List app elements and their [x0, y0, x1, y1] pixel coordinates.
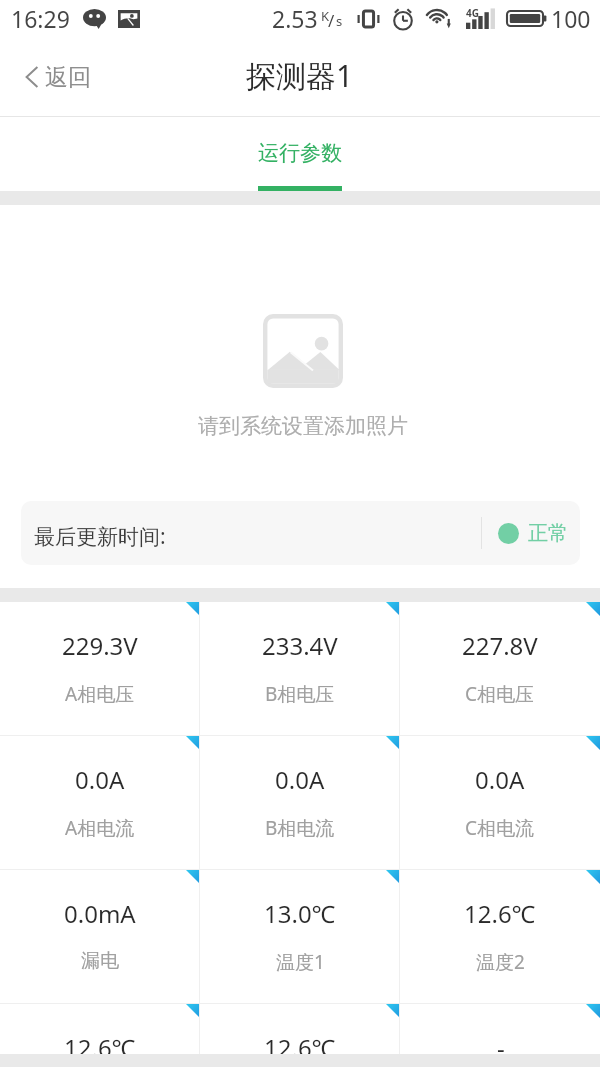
staticText: 227.8V: [462, 629, 538, 662]
button[interactable]: -: [400, 1004, 600, 1067]
staticText: 2.53: [272, 3, 318, 34]
button[interactable]: 运行参数: [200, 117, 400, 191]
button[interactable]: 0.0mA: [0, 870, 200, 1003]
staticText: 温度2: [476, 949, 525, 975]
staticText: 探测器1: [246, 55, 354, 96]
button[interactable]: 229.3V: [0, 602, 200, 735]
staticText: B相电压: [265, 681, 335, 707]
button[interactable]: 0.0A: [0, 736, 200, 869]
staticText: 最后更新时间:: [34, 522, 166, 551]
staticText: 100: [551, 3, 591, 34]
staticText: A相电流: [65, 815, 135, 841]
button[interactable]: 12.6℃: [200, 1004, 400, 1067]
staticText: C相电压: [465, 681, 535, 707]
staticText: 16:29: [11, 3, 70, 34]
staticText: B相电流: [265, 815, 335, 841]
staticText: 0.0A: [75, 763, 125, 796]
button[interactable]: 227.8V: [400, 602, 600, 735]
staticText: -: [497, 1031, 505, 1064]
staticText: K: [321, 7, 330, 25]
staticText: s: [336, 12, 343, 30]
button[interactable]: 返回: [0, 37, 109, 117]
staticText: 13.0℃: [264, 897, 336, 930]
staticText: 温度1: [276, 949, 325, 975]
button[interactable]: 0.0A: [400, 736, 600, 869]
button[interactable]: 13.0℃: [200, 870, 400, 1003]
button[interactable]: 最后更新时间:: [21, 501, 580, 565]
staticText: A相电压: [65, 681, 135, 707]
staticText: 漏电: [81, 949, 119, 973]
staticText: /: [328, 9, 335, 32]
staticText: 正常: [528, 521, 568, 546]
staticText: 12.6℃: [464, 897, 536, 930]
staticText: 0.0A: [275, 763, 325, 796]
staticText: 233.4V: [262, 629, 338, 662]
staticText: C相电流: [465, 815, 535, 841]
staticText: 12.6℃: [64, 1031, 136, 1064]
staticText: 4G: [466, 6, 479, 20]
staticText: 运行参数: [258, 140, 342, 166]
button[interactable]: 233.4V: [200, 602, 400, 735]
staticText: 12.6℃: [264, 1031, 336, 1064]
staticText: 返回: [45, 63, 91, 92]
button[interactable]: 12.6℃: [0, 1004, 200, 1067]
button[interactable]: 0.0A: [200, 736, 400, 869]
staticText: 0.0A: [475, 763, 525, 796]
staticText: 229.3V: [62, 629, 138, 662]
staticText: 请到系统设置添加照片: [198, 413, 408, 439]
staticText: 0.0mA: [64, 897, 136, 930]
button[interactable]: 12.6℃: [400, 870, 600, 1003]
